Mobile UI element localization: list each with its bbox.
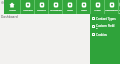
button[interactable]: Accounts (21, 0, 34, 14)
staticText: Dashboard (1, 15, 18, 19)
button[interactable]: Cookies (92, 32, 120, 37)
staticText: Contact Types (96, 17, 116, 21)
staticText: Accounts (23, 9, 33, 12)
button[interactable]: Notes (91, 0, 104, 14)
button[interactable]: Integrations (105, 0, 118, 14)
button[interactable]: Contact Types (92, 16, 120, 21)
staticText: Contacts (37, 9, 46, 12)
staticText: Notes (94, 9, 101, 12)
staticText: Custom Field Types (96, 24, 120, 29)
staticText: Home (9, 9, 16, 12)
staticText: Deals (67, 9, 73, 12)
staticText: Companies (50, 9, 62, 12)
staticText: Cookies (96, 33, 108, 37)
staticText: Integrations (105, 9, 118, 12)
button[interactable]: Tasks (77, 0, 90, 14)
staticText: Tasks (81, 9, 87, 12)
staticText: Reports (119, 9, 120, 14)
button[interactable]: Logo (1, 1, 4, 4)
button[interactable]: Custom Field Types (92, 24, 120, 29)
button[interactable]: Companies (49, 0, 62, 14)
button[interactable]: Contacts (35, 0, 48, 14)
button[interactable]: Deals (63, 0, 76, 14)
button[interactable]: Reports (119, 0, 120, 14)
button[interactable]: Home (4, 0, 20, 14)
